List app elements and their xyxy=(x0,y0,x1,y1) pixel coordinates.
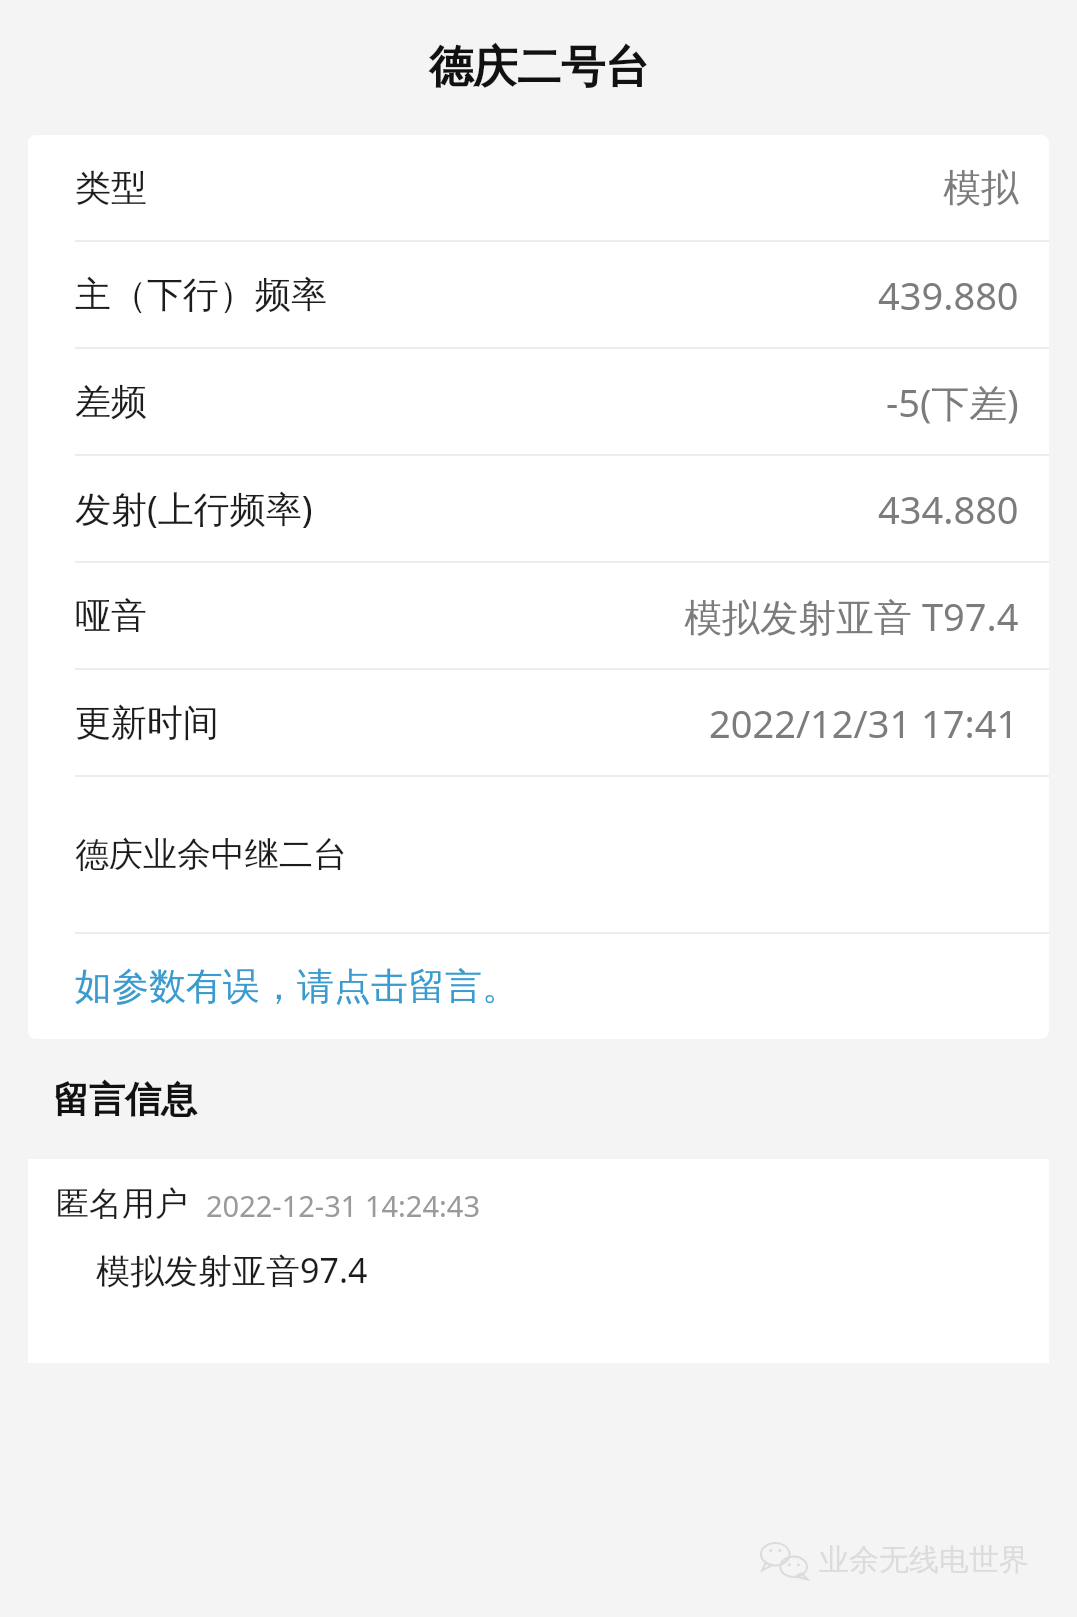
staticText: 模拟 xyxy=(943,164,1019,212)
staticText: 发射(上行频率) xyxy=(75,484,313,533)
button[interactable]: 匿名用户 xyxy=(28,1159,1049,1363)
other: WeChat watermark xyxy=(761,1543,807,1577)
staticText: 434.880 xyxy=(878,483,1019,535)
button[interactable]: 哑音 xyxy=(28,563,1049,668)
staticText: 类型 xyxy=(75,165,147,210)
staticText: 更新时间 xyxy=(75,700,219,745)
button[interactable]: 差频 xyxy=(28,349,1049,454)
button[interactable]: 类型 xyxy=(28,135,1049,240)
button[interactable]: 如参数有误，请点击留言。 xyxy=(28,934,1049,1039)
staticText: 业余无线电世界 xyxy=(819,1541,1029,1579)
button[interactable]: 主（下行）频率 xyxy=(28,242,1049,347)
staticText: 439.880 xyxy=(878,269,1019,321)
button[interactable]: 德庆业余中继二台 xyxy=(28,777,1049,932)
staticText: 哑音 xyxy=(75,593,147,638)
staticText: -5(下差) xyxy=(886,376,1019,428)
staticText: 2022-12-31 14:24:43 xyxy=(206,1186,480,1225)
staticText: 主（下行）频率 xyxy=(75,272,327,317)
staticText: 留言信息 xyxy=(53,1077,197,1122)
staticText: 差频 xyxy=(75,379,147,424)
staticText: 如参数有误，请点击留言。 xyxy=(75,963,519,1010)
staticText: 匿名用户 xyxy=(56,1183,188,1225)
staticText: 模拟发射亚音 T97.4 xyxy=(684,590,1019,642)
staticText: 模拟发射亚音97.4 xyxy=(96,1247,368,1293)
staticText: 德庆业余中继二台 xyxy=(75,833,347,876)
button[interactable]: 发射(上行频率) xyxy=(28,456,1049,561)
staticText: 2022/12/31 17:41 xyxy=(709,697,1019,749)
staticText: 德庆二号台 xyxy=(429,40,649,95)
button[interactable]: 更新时间 xyxy=(28,670,1049,775)
